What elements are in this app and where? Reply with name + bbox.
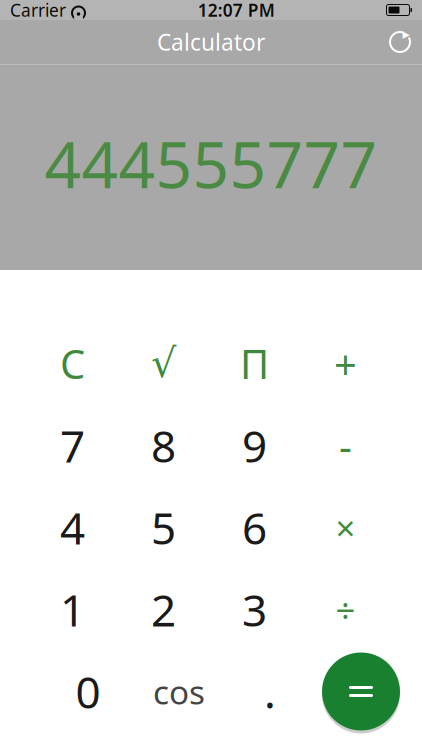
staticText: 3 — [242, 580, 267, 639]
staticText: C — [60, 337, 85, 390]
button[interactable]: cos — [133, 650, 224, 732]
button[interactable]: 4 — [27, 486, 118, 568]
staticText: 12:07 PM — [198, 0, 275, 21]
staticText: √ — [151, 341, 176, 386]
staticText: + — [334, 337, 357, 390]
staticText: Calculator — [157, 27, 265, 57]
staticText: ÷ — [335, 586, 355, 632]
staticText: 7 — [60, 416, 85, 475]
staticText: 2 — [151, 580, 176, 639]
button[interactable]: 0 — [42, 650, 133, 732]
button[interactable]: 7 — [27, 404, 118, 486]
button[interactable]: √ — [118, 322, 209, 404]
button[interactable]: 5 — [118, 486, 209, 568]
button[interactable]: 3 — [209, 568, 300, 650]
staticText: × — [335, 504, 355, 550]
button[interactable] — [315, 650, 406, 732]
button[interactable]: + — [300, 322, 391, 404]
staticText: ▸ — [402, 26, 409, 42]
staticText: cos — [153, 669, 205, 714]
staticText: 444555777 — [44, 121, 377, 206]
button[interactable]: 2 — [118, 568, 209, 650]
staticText: 0 — [75, 662, 100, 721]
staticText: 5 — [151, 498, 176, 557]
button[interactable]: 9 — [209, 404, 300, 486]
staticText: 8 — [151, 416, 176, 475]
button[interactable]: C — [27, 322, 118, 404]
staticText: 6 — [242, 498, 267, 557]
button[interactable]: - — [300, 404, 391, 486]
staticText: - — [339, 419, 352, 472]
button[interactable]: ÷ — [300, 568, 391, 650]
button[interactable]: Π — [209, 322, 300, 404]
button[interactable]: × — [300, 486, 391, 568]
staticText: Carrier — [10, 0, 66, 21]
staticText: 1 — [60, 580, 85, 639]
button[interactable]: Reset — [378, 20, 422, 64]
staticText: 9 — [242, 416, 267, 475]
button[interactable]: 1 — [27, 568, 118, 650]
button[interactable]: . — [224, 650, 315, 732]
staticText: . — [264, 662, 276, 721]
button[interactable]: 8 — [118, 404, 209, 486]
staticText: Π — [240, 337, 269, 390]
staticText: 4 — [60, 498, 85, 557]
button[interactable]: 6 — [209, 486, 300, 568]
